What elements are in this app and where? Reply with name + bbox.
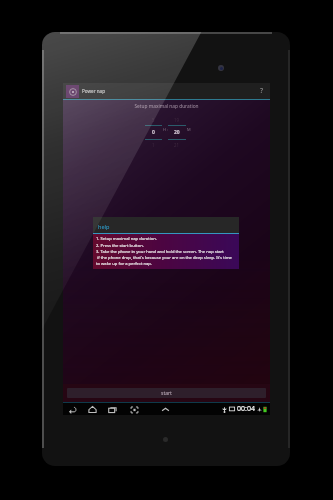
button[interactable]: 5 [145, 117, 162, 148]
button[interactable]: 19 [168, 117, 186, 148]
staticText: Power nap [82, 88, 106, 94]
staticText: help [98, 223, 110, 231]
staticText: 1. Setup maximal nap duration. 2. Press … [96, 236, 232, 266]
button[interactable]: Expand [157, 403, 173, 415]
staticText: 00:04 [237, 404, 255, 414]
staticText: ? [260, 86, 264, 96]
staticText: 5 [152, 117, 155, 123]
staticText: start [161, 390, 172, 397]
staticText: M [187, 127, 191, 132]
button[interactable]: Recents [104, 403, 120, 415]
staticText: Setup maximal nap duration [63, 103, 270, 110]
staticText: 1 [152, 142, 155, 148]
staticText: H : [163, 127, 169, 132]
button[interactable]: Back [64, 403, 80, 415]
staticText: 21 [174, 142, 180, 148]
staticText: 0 [152, 129, 155, 136]
button[interactable]: start [67, 388, 266, 398]
staticText: 19 [174, 117, 180, 123]
staticText: 20 [174, 129, 180, 136]
button[interactable]: Help [254, 83, 270, 99]
button[interactable]: Screenshot [126, 403, 142, 415]
button[interactable]: help [93, 217, 239, 269]
button[interactable]: Home [84, 403, 100, 415]
